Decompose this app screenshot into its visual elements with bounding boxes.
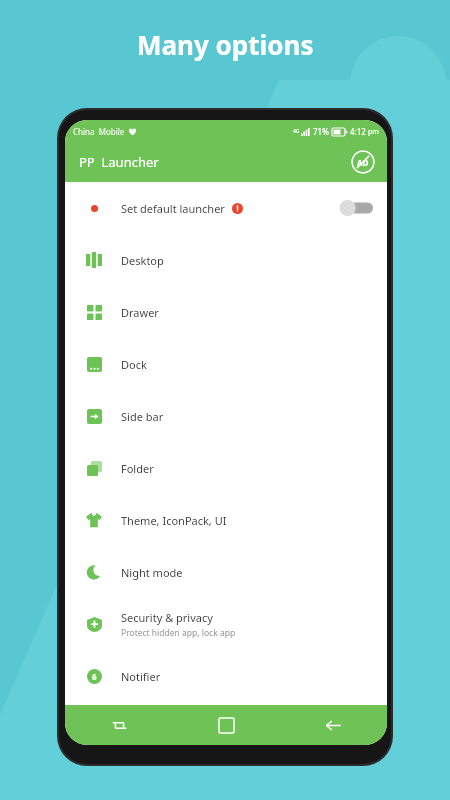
button[interactable]: Set default launcher toggle <box>339 199 373 217</box>
staticText: 6 <box>92 671 97 682</box>
staticText: Set default launcher <box>121 201 225 216</box>
button[interactable]: Desktop <box>65 234 387 286</box>
staticText: 4:12 <box>350 126 366 137</box>
button[interactable]: Recents <box>65 705 173 745</box>
staticText: Theme, IconPack, UI <box>121 513 227 528</box>
staticText: pm <box>368 127 379 137</box>
button[interactable]: Set default launcher <box>65 182 387 234</box>
button[interactable]: Remove ads <box>351 150 375 174</box>
button[interactable]: Drawer <box>65 286 387 338</box>
staticText: Security & privacy <box>121 610 213 625</box>
staticText: Notifier <box>121 669 161 684</box>
button[interactable]: Home <box>173 705 280 745</box>
staticText: AD <box>357 157 369 168</box>
staticText: 71% <box>313 126 329 137</box>
staticText: China Mobile <box>73 126 125 137</box>
button[interactable]: Security & privacy <box>65 598 387 650</box>
staticText: Many options <box>137 27 314 62</box>
button[interactable]: 6 <box>65 650 387 702</box>
button[interactable]: Night mode <box>65 546 387 598</box>
staticText: Folder <box>121 461 154 476</box>
button[interactable]: Theme, IconPack, UI <box>65 494 387 546</box>
staticText: Desktop <box>121 253 164 268</box>
staticText: PP Launcher <box>79 153 159 171</box>
staticText: 4G <box>293 128 300 135</box>
staticText: Side bar <box>121 409 164 424</box>
button[interactable]: Side bar <box>65 390 387 442</box>
staticText: Night mode <box>121 565 183 580</box>
staticText: Dock <box>121 357 147 372</box>
button[interactable]: Folder <box>65 442 387 494</box>
staticText: Drawer <box>121 305 159 320</box>
button[interactable]: Back <box>280 705 387 745</box>
button[interactable]: Dock <box>65 338 387 390</box>
staticText: Protect hidden app, lock app <box>121 627 236 639</box>
